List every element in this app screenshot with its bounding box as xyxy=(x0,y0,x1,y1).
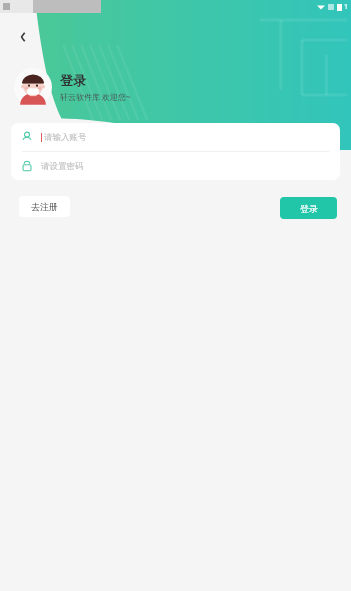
staticText: 去注册 xyxy=(31,201,58,212)
staticText: 登录 xyxy=(300,203,318,214)
button[interactable]: Back xyxy=(10,24,36,50)
button[interactable]: 请设置密码 xyxy=(11,152,340,180)
button[interactable]: 去注册 xyxy=(19,196,70,217)
button[interactable]: 登录 xyxy=(280,197,337,219)
staticText: 请设置密码 xyxy=(41,161,84,172)
staticText: 请输入账号 xyxy=(44,132,87,143)
button[interactable]: 请输入账号 xyxy=(11,123,340,151)
staticText: 登录 xyxy=(60,72,86,88)
staticText: 轩云软件库 欢迎您~ xyxy=(60,91,131,102)
staticText: 1 xyxy=(344,2,349,12)
